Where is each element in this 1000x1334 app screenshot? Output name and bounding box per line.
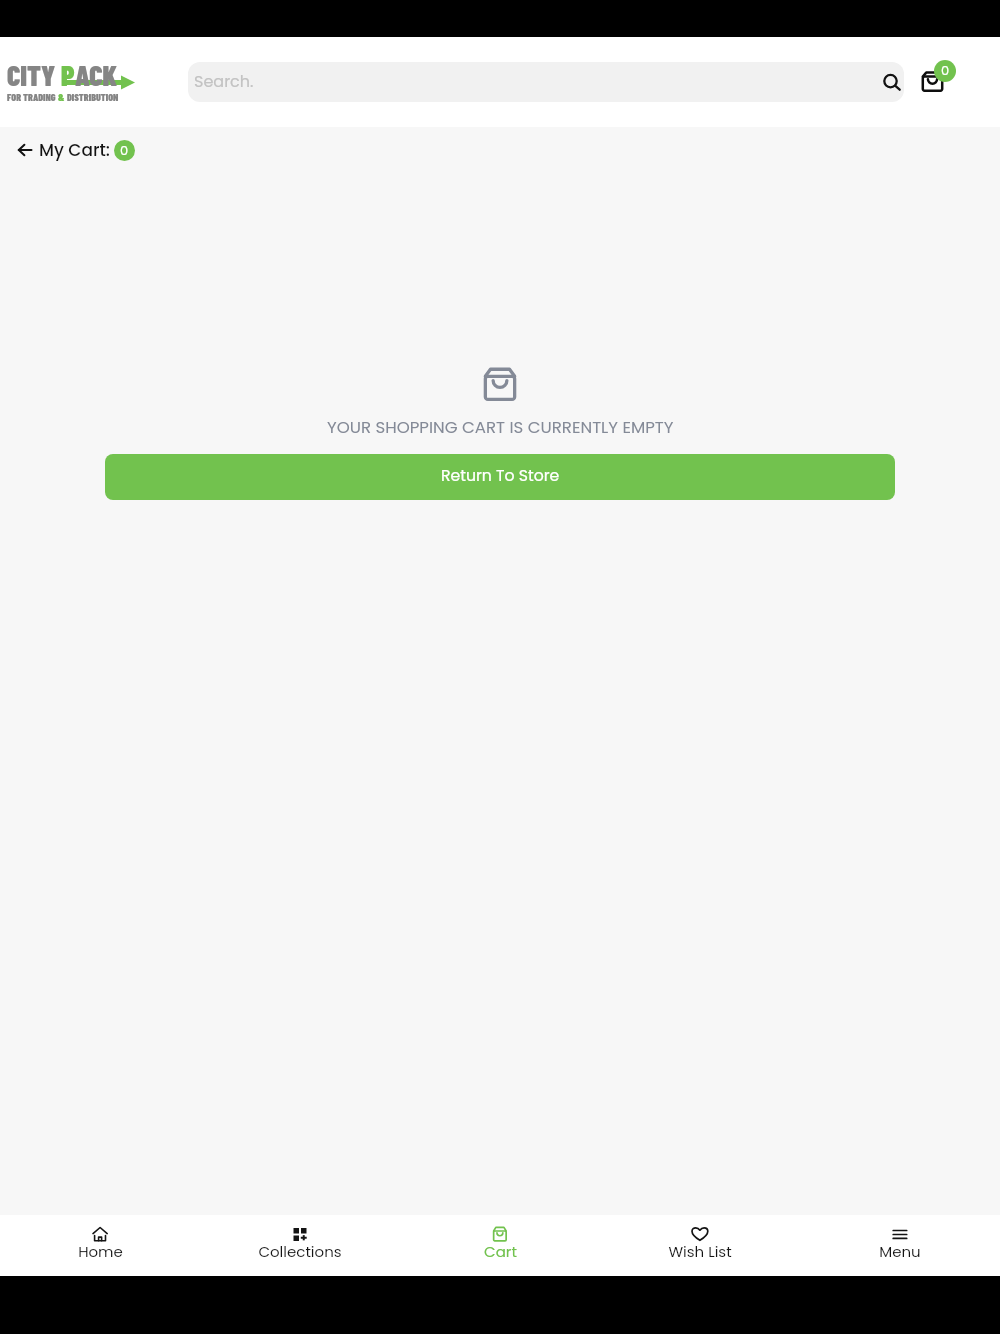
staticText: Collections bbox=[258, 1241, 342, 1262]
button[interactable]: Wish List bbox=[600, 1215, 800, 1276]
staticText: Wish List bbox=[668, 1241, 732, 1262]
staticText: Cart bbox=[484, 1241, 517, 1262]
staticText: & bbox=[58, 91, 65, 103]
staticText: DISTRIBUTION bbox=[65, 91, 119, 103]
button[interactable]: Menu bbox=[800, 1215, 1000, 1276]
staticText: FOR TRADING bbox=[7, 91, 58, 103]
button[interactable]: Back bbox=[18, 140, 38, 160]
staticText: CITY bbox=[7, 58, 61, 92]
staticText: 0 bbox=[941, 61, 950, 79]
staticText: Search. bbox=[194, 70, 254, 92]
staticText: ACK bbox=[75, 58, 118, 92]
button[interactable]: Shopping bag bbox=[914, 63, 954, 103]
button[interactable]: Search. bbox=[188, 62, 904, 102]
staticText: Menu bbox=[879, 1241, 921, 1262]
staticText: 0 bbox=[120, 141, 129, 159]
button[interactable]: Return To Store bbox=[105, 454, 895, 500]
button[interactable]: Cart bbox=[400, 1215, 600, 1276]
staticText: Return To Store bbox=[441, 465, 560, 487]
staticText: My Cart: bbox=[39, 138, 110, 162]
staticText: YOUR SHOPPING CART IS CURRENTLY EMPTY bbox=[327, 416, 674, 439]
staticText: Home bbox=[78, 1241, 123, 1262]
button[interactable]: City Pack logo bbox=[7, 64, 147, 110]
button[interactable]: Collections bbox=[200, 1215, 400, 1276]
button[interactable]: Home bbox=[0, 1215, 200, 1276]
staticText: P bbox=[61, 58, 75, 92]
